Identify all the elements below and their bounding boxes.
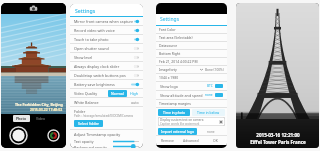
staticText: Font Color: [159, 27, 176, 32]
button[interactable]: Shutter: [10, 127, 27, 144]
button[interactable]: Battery save brightness: [70, 80, 143, 88]
button[interactable]: Doubletap switch buttons pos: [70, 71, 143, 79]
button[interactable]: Gallery: [48, 130, 59, 141]
staticText: Video: [36, 116, 45, 121]
button[interactable]: Show level: [70, 53, 143, 61]
button[interactable]: White Balance: [70, 98, 143, 106]
button[interactable]: Photo: [13, 115, 30, 122]
staticText: Record video with voice: [74, 28, 115, 33]
button[interactable]: Timestamp margins: [156, 100, 227, 107]
button[interactable]: Record video with voice: [70, 26, 143, 34]
button[interactable]: Time in photo: [158, 109, 190, 116]
button[interactable]: Normal: [108, 90, 127, 97]
staticText: Feb 21, 2014 4:00:22 PM: [159, 59, 198, 64]
staticText: 1044 x 1980: [159, 75, 179, 80]
staticText: Display custom text on camera: [160, 118, 204, 122]
staticText: White Balance: [74, 100, 99, 105]
staticText: Show level: [74, 55, 93, 60]
staticText: Select folder: [78, 121, 99, 126]
button[interactable]: [134, 73, 139, 78]
staticText: Doubletap switch buttons pos: [74, 73, 126, 78]
staticText: Settings: [75, 7, 96, 14]
staticText: OK: [213, 138, 218, 143]
staticText: Normal: [111, 91, 124, 96]
staticText: Show logo: [160, 84, 178, 89]
staticText: none: [205, 93, 213, 97]
button[interactable]: Mirror front camera when capture: [70, 17, 143, 25]
button[interactable]: Imageforty: [156, 66, 227, 73]
staticText: Bottom Right: [159, 51, 181, 56]
staticText: 2015-03-16 12:21:00: [256, 132, 300, 138]
staticText: Time in below: [197, 110, 220, 115]
staticText: Timestamp margins: [159, 101, 191, 106]
button[interactable]: [215, 84, 223, 88]
button[interactable]: [134, 19, 139, 24]
button[interactable]: Feb 21, 2014 4:00:22 PM: [156, 58, 227, 65]
button[interactable]: Bottom Right: [156, 50, 227, 57]
button[interactable]: [134, 37, 139, 42]
staticText: Import external logo: [161, 129, 194, 134]
button[interactable]: [134, 28, 139, 33]
button[interactable]: Show logo: [156, 82, 227, 90]
staticText: High: [130, 91, 139, 96]
staticText: Background opacity: [74, 145, 107, 148]
staticText: BTC: [207, 84, 213, 88]
button[interactable]: [131, 82, 139, 87]
button[interactable]: Background opacity: [70, 145, 143, 148]
staticText: Remove: [161, 138, 174, 143]
button[interactable]: [134, 64, 139, 69]
button[interactable]: Select folder: [74, 120, 103, 127]
button[interactable]: Time in below: [192, 109, 225, 116]
staticText: Open shutter sound: [74, 46, 109, 51]
button[interactable]: Open shutter sound: [70, 44, 143, 52]
button[interactable]: Text opacity: [70, 138, 143, 145]
button[interactable]: Video Quality: [70, 89, 143, 97]
staticText: Mirror front camera when capture: [74, 19, 134, 24]
button[interactable]: Font Color: [156, 26, 227, 33]
button[interactable]: OK: [203, 136, 227, 145]
staticText: 2015-03-22 17:48:02: [30, 107, 63, 112]
staticText: Show altitude and speed: [160, 93, 203, 98]
staticText: Advanced: [183, 138, 199, 143]
staticText: Battery save brightness: [74, 82, 115, 87]
staticText: Folder: [74, 109, 86, 114]
button[interactable]: [134, 55, 139, 60]
staticText: Adjust Timestamp opacity: [74, 132, 121, 137]
button[interactable]: Import external logo: [158, 128, 197, 135]
button[interactable]: Datasource: [156, 42, 227, 49]
staticText: Text opacity: [74, 139, 94, 144]
button[interactable]: Touch to take photo: [70, 35, 143, 43]
staticText: Bone (100%): [205, 68, 224, 72]
staticText: Video Quality: [74, 91, 98, 96]
button[interactable]: 1044 x 1980: [156, 74, 227, 81]
staticText: Time in photo: [163, 110, 186, 115]
button[interactable]: Text area (Selectable): [156, 34, 227, 41]
staticText: Caption words like watermark: [160, 122, 200, 126]
staticText: Photo: [16, 116, 27, 121]
button[interactable]: Display custom text on camera: [158, 117, 225, 126]
staticText: Always display clock slider: [74, 64, 120, 69]
button[interactable]: Show altitude and speed: [156, 91, 227, 99]
staticText: Settings: [160, 16, 180, 23]
staticText: auto: [131, 100, 139, 105]
button[interactable]: Always display clock slider: [70, 62, 143, 70]
staticText: Imageforty: [159, 67, 177, 72]
staticText: Path : /storage/emulated/0/DCIM/Camera: [74, 114, 134, 118]
staticText: Datasource: [159, 43, 178, 48]
button[interactable]: [134, 46, 139, 51]
button[interactable]: Advanced: [179, 136, 203, 145]
button[interactable]: Camera mode: [1, 3, 66, 14]
staticText: Eiffel Tower Paris France: [250, 139, 306, 145]
button[interactable]: Remove: [156, 136, 179, 145]
button[interactable]: Video: [34, 115, 47, 122]
staticText: The Forbidden City, Beijing: [15, 102, 63, 107]
staticText: none: [207, 130, 215, 134]
staticText: Text area (Selectable): [159, 35, 193, 40]
staticText: Touch to take photo: [74, 37, 109, 42]
button[interactable]: [215, 93, 223, 97]
